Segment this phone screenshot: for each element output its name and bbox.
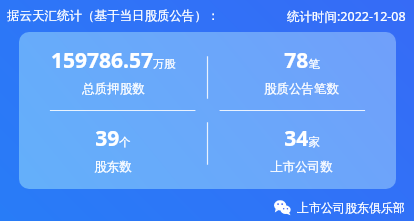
button[interactable]: 39个 bbox=[19, 110, 207, 189]
staticText: 统计时间:2022-12-08 bbox=[287, 8, 406, 25]
staticText: 39个 bbox=[95, 124, 131, 153]
staticText: 总质押股数 bbox=[82, 81, 145, 97]
staticText: 股质公告笔数 bbox=[264, 81, 339, 97]
staticText: 上市公司数 bbox=[270, 159, 333, 175]
staticText: 股东数 bbox=[94, 159, 132, 175]
other: 微信公众号 bbox=[274, 199, 291, 216]
button[interactable]: 微信公众号 bbox=[274, 199, 405, 216]
staticText: 34家 bbox=[284, 124, 320, 153]
button[interactable]: 159786.57万股 bbox=[19, 32, 207, 110]
staticText: 78笔 bbox=[284, 46, 320, 75]
button[interactable]: 34家 bbox=[207, 110, 396, 189]
button[interactable]: 78笔 bbox=[207, 32, 396, 110]
staticText: 上市公司股东俱乐部 bbox=[297, 200, 405, 215]
staticText: 159786.57万股 bbox=[51, 46, 176, 75]
staticText: 据云天汇统计（基于当日股质公告）： bbox=[7, 8, 220, 24]
